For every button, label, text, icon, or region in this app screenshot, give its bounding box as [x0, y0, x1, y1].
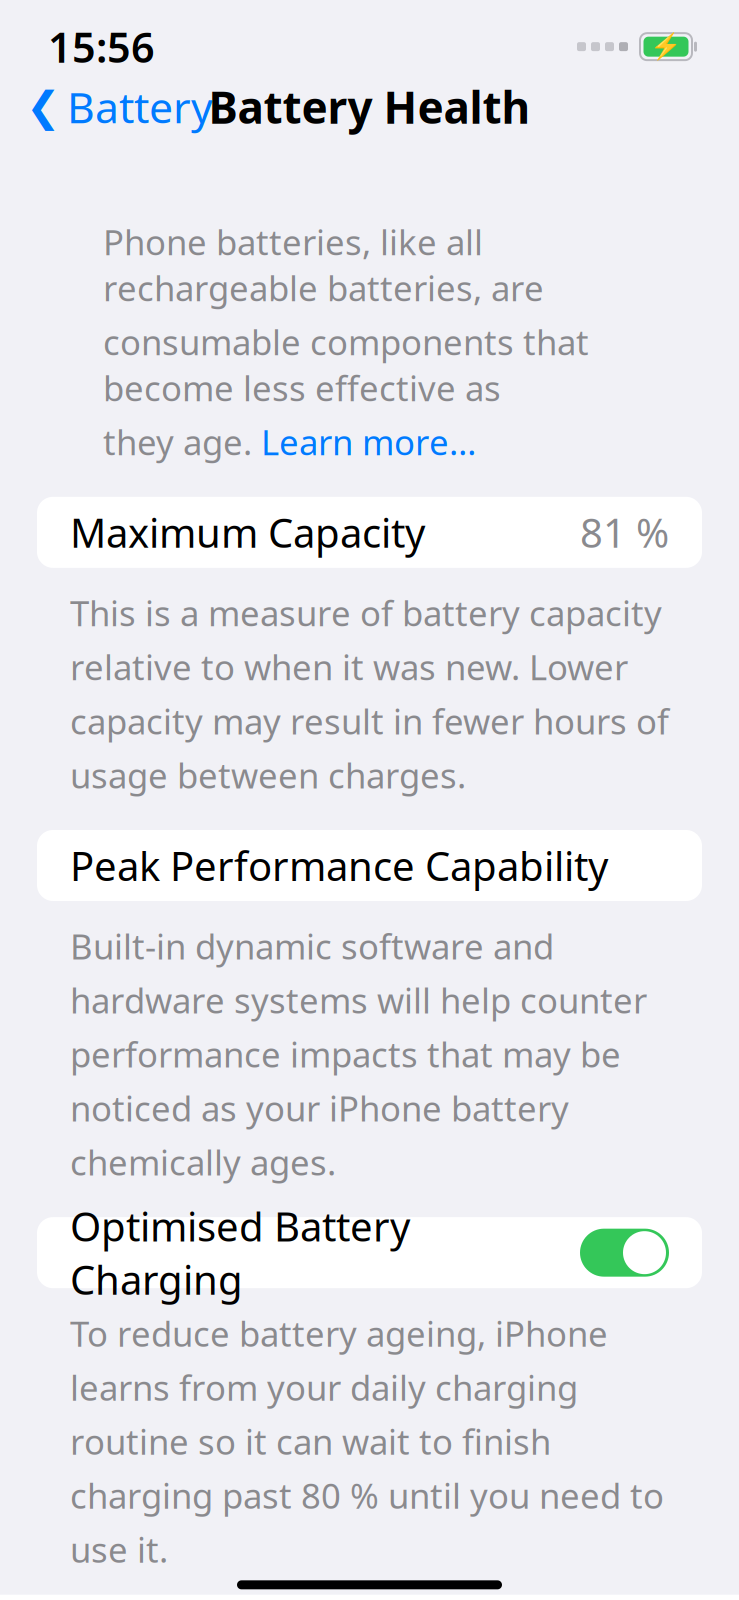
button[interactable]: ❮ [0, 68, 213, 145]
staticText: ⚡ [650, 32, 682, 61]
staticText: 81 % [580, 506, 669, 559]
staticText: Optimised Battery Charging [70, 1199, 410, 1306]
button[interactable]: Peak Performance Capability [37, 830, 702, 901]
staticText: Built-in dynamic software and hardware s… [70, 923, 647, 1185]
staticText: Learn more… [261, 419, 476, 465]
staticText: To reduce battery ageing, iPhone learns … [70, 1310, 664, 1572]
staticText: Maximum Capacity [70, 506, 425, 559]
staticText: Battery [67, 78, 213, 135]
staticText: Peak Performance Capability [70, 839, 608, 892]
button[interactable]: Optimised Battery Charging [37, 1217, 702, 1288]
staticText: they age. [103, 419, 261, 465]
button[interactable]: Learn more… [261, 419, 476, 465]
staticText: Battery Health [208, 77, 530, 136]
staticText: 15:56 [48, 19, 155, 74]
staticText: Phone batteries, like all rechargeable b… [103, 219, 544, 311]
staticText: consumable components that become less e… [103, 319, 589, 411]
staticText: ❮ [26, 83, 61, 130]
button[interactable]: Maximum Capacity [37, 497, 702, 568]
button[interactable]: Optimised Battery Charging [580, 1229, 669, 1277]
staticText: This is a measure of battery capacity re… [70, 590, 669, 798]
